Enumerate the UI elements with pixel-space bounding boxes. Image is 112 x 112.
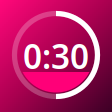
staticText: 0:30 xyxy=(23,34,89,78)
